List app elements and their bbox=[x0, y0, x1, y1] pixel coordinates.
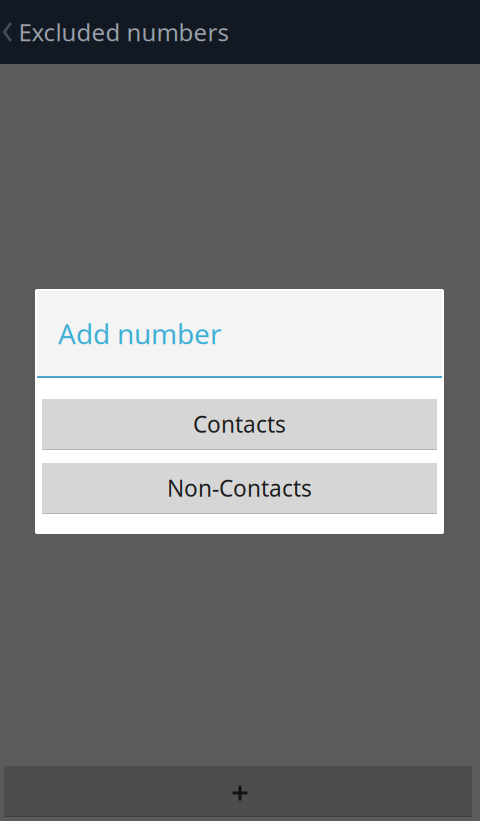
button[interactable]: Back to Excluded numbers bbox=[0, 0, 480, 64]
staticText: Excluded numbers bbox=[18, 16, 228, 48]
button[interactable]: Add bbox=[4, 766, 472, 817]
staticText: Non-Contacts bbox=[167, 473, 312, 503]
staticText: Add number bbox=[58, 315, 222, 352]
button[interactable]: Contacts bbox=[42, 399, 437, 450]
staticText: Contacts bbox=[193, 409, 286, 439]
button[interactable]: Non-Contacts bbox=[42, 463, 437, 514]
